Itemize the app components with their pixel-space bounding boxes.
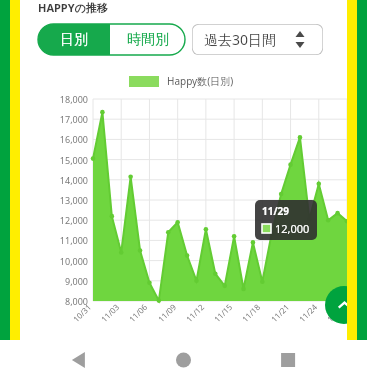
staticText: 10/31 [70,301,94,324]
staticText: HAPPYの推移 [38,0,108,15]
staticText: 10,000 [34,255,88,267]
staticText: 11,000 [34,234,88,246]
button[interactable]: 時間別 [110,24,185,55]
staticText: 11/24 [296,301,320,324]
staticText: 11/29 [262,204,290,218]
button[interactable]: Recent apps [268,340,308,380]
staticText: 過去30日間 [204,30,277,49]
staticText: 13,000 [34,194,88,206]
staticText: 11/12 [183,301,207,324]
staticText: 11/06 [126,301,150,324]
staticText: 12,000 [275,221,310,236]
staticText: Happy数(日別) [167,74,234,88]
staticText: 14,000 [34,174,88,186]
button[interactable]: 日別 [38,24,110,55]
button[interactable]: Home [163,340,203,380]
staticText: 11/03 [98,301,122,324]
button[interactable]: 過去30日間 [192,24,323,55]
staticText: 時間別 [127,31,169,49]
staticText: 11/09 [155,301,179,324]
staticText: 12,000 [34,214,88,226]
button[interactable]: Scroll to top [325,286,363,324]
staticText: 16,000 [34,133,88,145]
staticText: 8,000 [34,295,88,307]
staticText: 9,000 [34,275,88,287]
staticText: 11/15 [211,301,235,324]
staticText: 18,000 [34,93,88,105]
button[interactable]: Back [59,340,99,380]
staticText: 日別 [60,31,88,49]
staticText: 17,000 [34,113,88,125]
staticText: 11/27 [324,301,348,324]
staticText: 15,000 [34,154,88,166]
staticText: 11/21 [268,301,292,324]
staticText: 11/18 [239,301,263,324]
